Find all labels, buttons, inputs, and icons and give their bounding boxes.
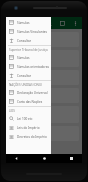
staticText: Nº 1865 DE 2000 bbox=[12, 134, 39, 139]
button[interactable]: LEI COMPLEMENTAR bbox=[9, 126, 79, 141]
button[interactable]: Súmulas orientadoras bbox=[6, 62, 51, 71]
button[interactable]: Recents bbox=[68, 155, 75, 162]
button[interactable]: Bookmarks bbox=[58, 19, 67, 28]
staticText: LEI COMPLEMENTAR bbox=[12, 90, 44, 94]
button[interactable]: LEI COMPLEMENTAR bbox=[9, 88, 79, 103]
button[interactable]: Carta das Nações Unidas bbox=[6, 97, 51, 106]
staticText: Leis do Império bbox=[17, 126, 40, 130]
staticText: LEI COMPLEMENTAR bbox=[12, 128, 44, 132]
staticText: Decretos do Império bbox=[17, 135, 47, 139]
button[interactable]: Súmulas Vinculantes bbox=[6, 27, 51, 36]
button[interactable]: LEI COMPLEMENTAR bbox=[9, 70, 79, 85]
staticText: Nº 1792 DE 1988 bbox=[12, 114, 39, 119]
staticText: Súmulas orientadoras bbox=[17, 65, 49, 69]
staticText: Nº 1646 DE 1964 bbox=[12, 78, 39, 83]
staticText: Nº 1573 DE 1952 bbox=[12, 58, 39, 63]
button[interactable]: Back bbox=[13, 155, 20, 162]
staticText: Súmulas bbox=[17, 21, 30, 25]
staticText: Carta das Nações Unidas bbox=[17, 100, 49, 104]
button[interactable]: Consultar Jurisprudência bbox=[6, 36, 51, 45]
button[interactable]: Declaração Universal bbox=[6, 88, 51, 97]
button[interactable]: More options bbox=[71, 19, 80, 28]
staticText: Lei 100 etc bbox=[17, 117, 33, 121]
staticText: Superior Tribunal de Justiça bbox=[9, 48, 48, 52]
staticText: LEI COMPLEMENTAR bbox=[12, 72, 44, 76]
staticText: LEI COMPLEMENTAR bbox=[12, 108, 44, 112]
button[interactable]: LEI COMPLEMENTAR bbox=[9, 106, 79, 123]
button[interactable]: Consultar Jurisprudência bbox=[6, 71, 51, 80]
staticText: LEI COMPLEMENTAR bbox=[12, 52, 44, 56]
button[interactable]: Súmulas bbox=[6, 18, 51, 27]
button[interactable]: Decretos do Império bbox=[6, 132, 51, 141]
button[interactable]: Lei 100 etc bbox=[6, 114, 51, 123]
button[interactable]: Home bbox=[41, 155, 48, 162]
staticText: Nº 1719 DE 1976 bbox=[12, 96, 39, 101]
staticText: Súmulas Vinculantes bbox=[17, 30, 47, 34]
button[interactable]: Search bbox=[45, 19, 54, 28]
button[interactable]: LEI COMPLEMENTAR bbox=[9, 32, 79, 47]
staticText: NAÇÕES UNIDAS (ONU) bbox=[9, 83, 42, 87]
staticText: Nº 1500 DE 1940 bbox=[12, 40, 39, 45]
button[interactable]: Súmulas bbox=[6, 53, 51, 62]
button[interactable]: LEI COMPLEMENTAR bbox=[9, 50, 79, 67]
button[interactable]: Leis do Império bbox=[6, 123, 51, 132]
staticText: Consultar Jurisprudência bbox=[17, 74, 49, 78]
staticText: Declaração Universal bbox=[17, 91, 48, 95]
staticText: Súmulas bbox=[17, 56, 30, 60]
staticText: LEIS bbox=[9, 109, 15, 113]
staticText: Consultar Jurisprudência bbox=[17, 39, 49, 43]
